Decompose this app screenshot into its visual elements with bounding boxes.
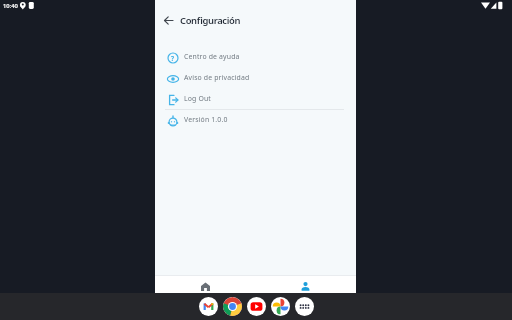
staticText: Centro de ayuda xyxy=(184,52,240,61)
staticText: 10:40 xyxy=(3,2,18,10)
button[interactable]: Log Out xyxy=(165,89,346,110)
button[interactable] xyxy=(255,275,356,293)
button[interactable] xyxy=(271,297,290,316)
button[interactable] xyxy=(160,11,178,29)
staticText: Configuración xyxy=(180,14,241,27)
staticText: Aviso de privacidad xyxy=(184,73,250,82)
button[interactable]: ? xyxy=(165,47,346,68)
button[interactable] xyxy=(223,297,242,316)
staticText: ? xyxy=(171,54,175,63)
button[interactable] xyxy=(155,275,255,293)
button[interactable]: Aviso de privacidad xyxy=(165,68,346,89)
button[interactable] xyxy=(247,297,266,316)
button[interactable] xyxy=(199,297,218,316)
staticText: Versión 1.0.0 xyxy=(184,115,228,124)
button[interactable] xyxy=(295,297,314,316)
staticText: Log Out xyxy=(184,94,211,103)
button[interactable]: Versión 1.0.0 xyxy=(165,110,346,131)
